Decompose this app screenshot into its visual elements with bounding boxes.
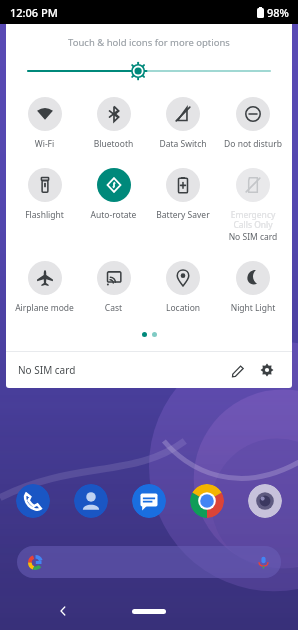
staticText: Auto-rotate	[79, 209, 148, 221]
button[interactable]: Home	[132, 609, 166, 614]
button[interactable]: phone	[16, 484, 50, 518]
button[interactable]: Night Light	[218, 259, 288, 316]
button[interactable]: contacts	[74, 484, 108, 518]
button[interactable]: Settings	[254, 357, 280, 383]
staticText: No SIM card	[218, 231, 288, 243]
button[interactable]: Search	[17, 546, 281, 578]
button[interactable]: Data Switch	[148, 95, 218, 152]
button[interactable]: Location	[148, 259, 218, 316]
button[interactable]: Auto-rotate	[79, 166, 148, 223]
button[interactable]: Bluetooth	[79, 95, 148, 152]
staticText: Wi-Fi	[10, 138, 79, 150]
button[interactable]: Wi-Fi	[10, 95, 79, 152]
staticText: Data Switch	[148, 138, 218, 150]
staticText: Do not disturb	[218, 138, 288, 150]
button[interactable]: Cast	[79, 259, 148, 316]
staticText: Bluetooth	[79, 138, 148, 150]
button[interactable]: Battery Saver	[148, 166, 218, 223]
button[interactable]: camera	[248, 484, 282, 518]
staticText: Emergency Calls Only	[218, 209, 288, 231]
button[interactable]: Back	[52, 600, 74, 622]
staticText: Airplane mode	[10, 302, 79, 314]
staticText: No SIM card	[18, 363, 76, 377]
staticText: 98%	[267, 5, 289, 20]
button[interactable]: Airplane mode	[10, 259, 79, 316]
staticText: Battery Saver	[148, 209, 218, 221]
staticText: Flashlight	[10, 209, 79, 221]
button[interactable]: chrome	[190, 484, 224, 518]
button[interactable]: messages	[132, 484, 166, 518]
staticText: Touch & hold icons for more options	[6, 36, 292, 49]
button[interactable]: Edit tiles	[225, 357, 251, 383]
staticText: Location	[148, 302, 218, 314]
staticText: Night Light	[218, 302, 288, 314]
staticText: 12:06 PM	[10, 5, 58, 20]
button[interactable]: Do not disturb	[218, 95, 288, 152]
staticText: Cast	[79, 302, 148, 314]
button[interactable]: Flashlight	[10, 166, 79, 223]
button[interactable]: Brightness	[28, 61, 270, 81]
button[interactable]: Emergency Calls Only	[218, 166, 288, 245]
